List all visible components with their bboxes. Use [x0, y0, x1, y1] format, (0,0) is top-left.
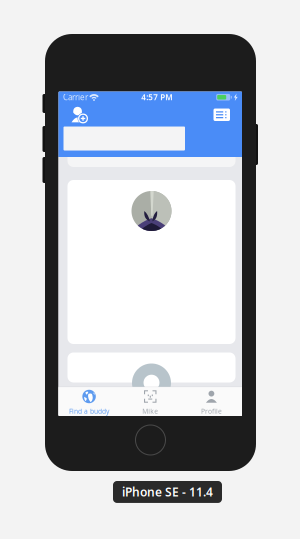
staticText: Find a buddy [69, 407, 109, 416]
button[interactable] [67, 180, 235, 344]
button[interactable]: Mike [120, 387, 181, 416]
staticText: Profile [201, 407, 222, 416]
staticText: Mike [142, 407, 158, 416]
staticText: Carrier [63, 92, 88, 102]
button[interactable]: Search [58, 126, 242, 150]
staticText: iPhone SE - 11.4 [122, 484, 213, 500]
button[interactable]: Add buddy [71, 103, 97, 126]
button[interactable]: Menu [204, 104, 230, 126]
button[interactable]: Find a buddy [58, 387, 120, 416]
button[interactable]: Profile [181, 387, 242, 416]
button[interactable] [67, 357, 235, 387]
staticText: 4:57 PM [141, 92, 172, 102]
